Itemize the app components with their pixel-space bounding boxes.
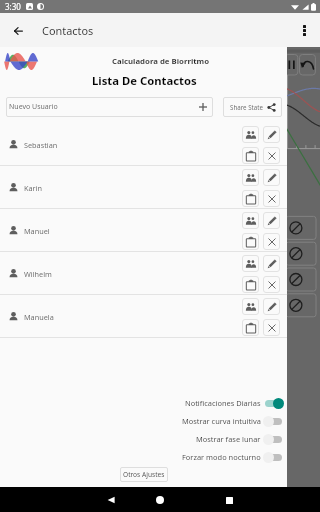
- button[interactable]: Edit: [263, 298, 280, 315]
- button[interactable]: Sebastian: [0, 123, 287, 166]
- button[interactable]: Delete: [263, 147, 280, 164]
- button[interactable]: Copy: [242, 319, 259, 336]
- staticText: Mostrar fase lunar: [196, 434, 261, 444]
- button[interactable]: Back: [100, 489, 122, 511]
- staticText: Karin: [24, 183, 242, 193]
- button[interactable]: Forzar modo nocturno: [0, 448, 287, 466]
- button[interactable]: Manuela: [0, 295, 287, 338]
- staticText: Sebastian: [24, 140, 242, 150]
- button[interactable]: Group: [242, 298, 259, 315]
- button[interactable]: Edit: [263, 126, 280, 143]
- button[interactable]: Group: [242, 255, 259, 272]
- staticText: Nuevo Usuario: [9, 102, 193, 112]
- button[interactable]: Edit: [263, 212, 280, 229]
- staticText: 3:30: [5, 1, 21, 12]
- staticText: Mostrar curva intuitiva: [182, 416, 261, 426]
- button[interactable]: Delete: [263, 233, 280, 250]
- button[interactable]: Delete: [263, 319, 280, 336]
- button[interactable]: Copy: [242, 276, 259, 293]
- button[interactable]: Recents: [218, 489, 240, 511]
- button[interactable]: Home: [149, 489, 171, 511]
- button[interactable]: Mostrar curva intuitiva: [0, 412, 287, 430]
- staticText: Notificaciones Diarias: [185, 398, 261, 408]
- button[interactable]: Copy: [242, 233, 259, 250]
- staticText: Lista De Contactos: [92, 73, 197, 88]
- staticText: Wilhelm: [24, 269, 242, 279]
- button[interactable]: Karin: [0, 166, 287, 209]
- staticText: Manuela: [24, 312, 242, 322]
- button[interactable]: Nuevo Usuario: [6, 97, 213, 117]
- button[interactable]: Back: [7, 19, 30, 42]
- button[interactable]: More options: [293, 19, 315, 41]
- button[interactable]: Wilhelm: [0, 252, 287, 295]
- staticText: Otros Ajustes: [123, 470, 165, 479]
- staticText: Contactos: [42, 23, 94, 38]
- button[interactable]: Group: [242, 212, 259, 229]
- button[interactable]: Delete: [263, 190, 280, 207]
- button[interactable]: Copy: [242, 190, 259, 207]
- button[interactable]: Manuel: [0, 209, 287, 252]
- staticText: Forzar modo nocturno: [182, 452, 261, 462]
- staticText: Calculadora de Biorritmo: [112, 56, 210, 67]
- button[interactable]: Edit: [263, 169, 280, 186]
- button[interactable]: Copy: [242, 147, 259, 164]
- button[interactable]: Group: [242, 169, 259, 186]
- button[interactable]: Share State: [223, 97, 282, 117]
- button[interactable]: Delete: [263, 276, 280, 293]
- button[interactable]: Notificaciones Diarias: [0, 394, 287, 412]
- button[interactable]: Group: [242, 126, 259, 143]
- staticText: Manuel: [24, 226, 242, 236]
- button[interactable]: Otros Ajustes: [120, 467, 168, 482]
- button[interactable]: Mostrar fase lunar: [0, 430, 287, 448]
- button[interactable]: Edit: [263, 255, 280, 272]
- staticText: Share State: [230, 103, 264, 111]
